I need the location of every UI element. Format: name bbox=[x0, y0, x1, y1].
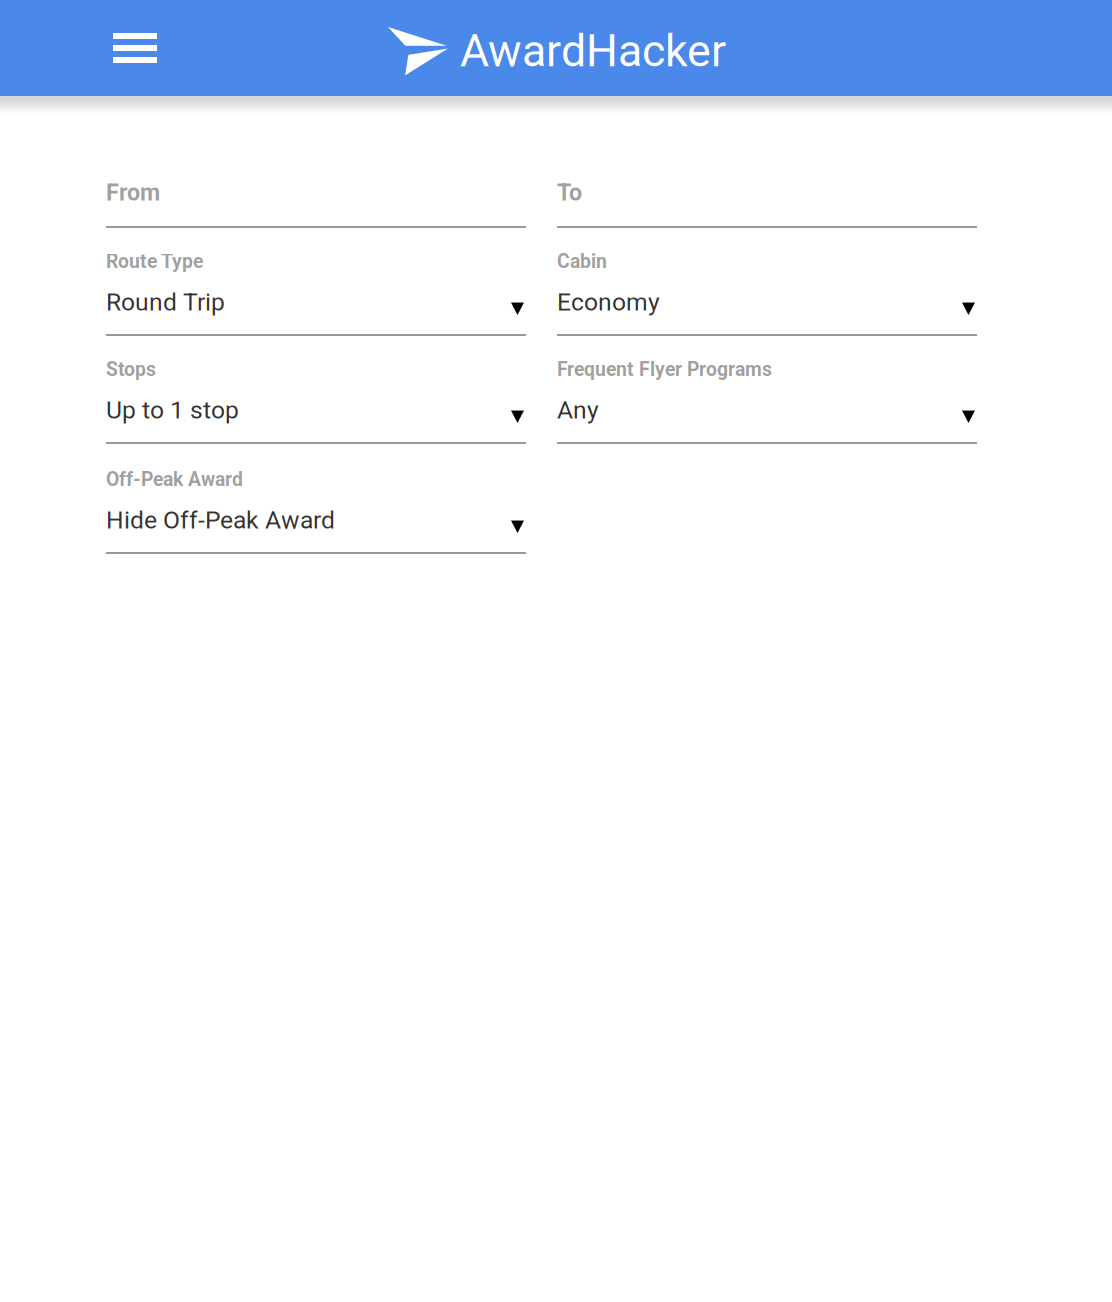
button[interactable]: To bbox=[557, 178, 977, 228]
staticText: Round Trip bbox=[106, 287, 225, 316]
staticText: AwardHacker bbox=[460, 25, 726, 77]
button[interactable]: Cabin bbox=[557, 250, 977, 336]
button[interactable]: Off-Peak Award bbox=[106, 468, 526, 554]
staticText: Cabin bbox=[557, 250, 607, 273]
button[interactable]: Open navigation menu bbox=[95, 0, 175, 96]
staticText: From bbox=[106, 179, 160, 206]
button[interactable]: From bbox=[106, 178, 526, 228]
staticText: Stops bbox=[106, 358, 156, 381]
button[interactable]: Frequent Flyer Programs bbox=[557, 358, 977, 444]
button[interactable]: Route Type bbox=[106, 250, 526, 336]
staticText: Economy bbox=[557, 287, 660, 316]
staticText: Frequent Flyer Programs bbox=[557, 358, 772, 381]
staticText: To bbox=[557, 179, 582, 206]
staticText: Hide Off-Peak Award bbox=[106, 505, 335, 534]
staticText: Any bbox=[557, 395, 599, 424]
button[interactable]: Stops bbox=[106, 358, 526, 444]
staticText: Off-Peak Award bbox=[106, 468, 243, 491]
staticText: Up to 1 stop bbox=[106, 395, 239, 424]
staticText: Route Type bbox=[106, 250, 203, 273]
